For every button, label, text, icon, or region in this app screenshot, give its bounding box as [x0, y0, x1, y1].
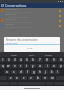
staticText: f — [27, 70, 29, 74]
staticText: 8 — [46, 58, 48, 62]
button[interactable]: 2 — [6, 58, 11, 62]
staticText: Rename this conversation — [6, 38, 38, 42]
staticText: Thanks for the quick update — [5, 26, 32, 28]
staticText: r — [20, 64, 22, 68]
button[interactable]: h — [37, 70, 42, 74]
staticText: Julia Kim — [5, 23, 14, 26]
staticText: Conversations — [5, 4, 27, 8]
staticText: 3 — [14, 58, 16, 62]
staticText: Sounds good, see you then! — [5, 11, 32, 13]
button[interactable]: 1 — [0, 58, 5, 62]
button[interactable]: 8 — [44, 58, 50, 62]
button[interactable]: s — [11, 70, 17, 74]
button[interactable]: 3 — [12, 58, 17, 62]
button[interactable]: w — [6, 64, 11, 68]
button[interactable]: 4 — [18, 58, 23, 62]
button[interactable]: 5 — [24, 58, 29, 62]
button[interactable]: c — [21, 76, 27, 80]
staticText: 6 — [32, 58, 34, 62]
staticText: 5 — [26, 58, 28, 62]
staticText: g — [33, 70, 35, 74]
staticText: Anna Wright — [5, 8, 18, 11]
button[interactable]: 6 — [30, 58, 36, 62]
staticText: Group — [45, 53, 53, 56]
staticText: 7 — [39, 58, 41, 62]
button[interactable]: r — [18, 64, 23, 68]
button[interactable]: i — [44, 64, 50, 68]
staticText: x — [16, 76, 18, 80]
staticText: Sync — [29, 53, 35, 56]
staticText: t — [26, 64, 28, 68]
button[interactable]: b — [35, 76, 41, 80]
button[interactable]: SAVE — [27, 47, 33, 50]
button[interactable]: n — [42, 76, 48, 80]
staticText: 0 — [60, 58, 62, 62]
staticText: b — [37, 76, 39, 80]
button[interactable]: u — [37, 64, 43, 68]
staticText: Team Sync — [5, 18, 16, 21]
button[interactable]: Julia Kim — [0, 23, 64, 28]
button[interactable]: t — [24, 64, 29, 68]
staticText: a — [6, 70, 8, 74]
staticText: m — [51, 76, 54, 80]
staticText: 2 — [8, 58, 10, 62]
staticText: Team Sync — [6, 42, 18, 45]
staticText: k — [51, 70, 53, 74]
button[interactable]: Anna Wright — [0, 8, 64, 13]
button[interactable]: Team Sync — [0, 18, 64, 23]
staticText: l — [57, 70, 58, 74]
button[interactable]: 7 — [37, 58, 43, 62]
button[interactable]: q — [0, 64, 5, 68]
button[interactable]: o — [51, 64, 57, 68]
staticText: q — [2, 64, 4, 68]
staticText: d — [20, 70, 22, 74]
staticText: 1 — [2, 58, 4, 62]
staticText: u — [39, 64, 41, 68]
staticText: y — [32, 64, 34, 68]
staticText: n — [44, 76, 46, 80]
staticText: 4 — [20, 58, 22, 62]
staticText: Team — [11, 53, 18, 56]
button[interactable]: v — [28, 76, 34, 80]
button[interactable]: k — [49, 70, 54, 74]
staticText: e — [14, 64, 16, 68]
button[interactable]: y — [30, 64, 36, 68]
staticText: w — [7, 64, 10, 68]
staticText: i — [47, 64, 48, 68]
staticText: j — [45, 70, 46, 74]
button[interactable]: m — [49, 76, 55, 80]
button[interactable]: a — [4, 70, 10, 74]
button[interactable]: g — [31, 70, 36, 74]
button[interactable]: Mark Davis — [0, 13, 64, 18]
button[interactable]: f — [25, 70, 30, 74]
staticText: h — [39, 70, 41, 74]
staticText: o — [53, 64, 55, 68]
button[interactable]: d — [18, 70, 24, 74]
staticText: v — [30, 76, 32, 80]
button[interactable]: e — [12, 64, 17, 68]
button[interactable]: j — [43, 70, 48, 74]
button[interactable]: Open navigation menu — [0, 3, 5, 8]
staticText: c — [23, 76, 25, 80]
button[interactable]: z — [8, 76, 13, 80]
button[interactable]: 9 — [51, 58, 57, 62]
staticText: 9 — [53, 58, 55, 62]
staticText: Mark Davis — [5, 13, 17, 16]
staticText: I'll send the files tonight — [5, 16, 28, 18]
staticText: s — [13, 70, 15, 74]
staticText: z — [10, 76, 12, 80]
button[interactable]: x — [14, 76, 20, 80]
button[interactable]: 0 — [58, 58, 64, 62]
staticText: SAVE — [27, 47, 33, 50]
button[interactable]: l — [55, 70, 60, 74]
staticText: Meeting moved to 3pm today — [5, 21, 33, 23]
staticText: p — [60, 64, 62, 68]
button[interactable]: p — [58, 64, 64, 68]
